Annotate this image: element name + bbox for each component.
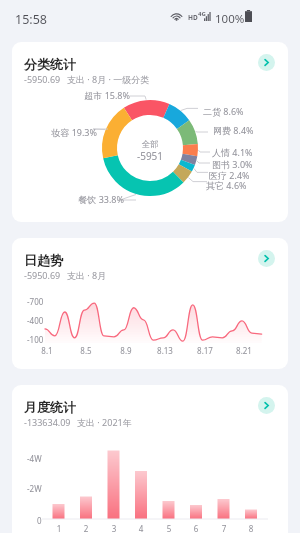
staticText: 8.21 [232,345,256,356]
staticText: 日趋势 [24,252,63,268]
staticText: 1 [49,523,69,533]
staticText: 医疗 2.4% [209,169,250,181]
staticText: 其它 4.6% [206,179,247,191]
staticText: 8.5 [74,345,98,356]
staticText: -5951 [120,149,180,163]
staticText: 二货 8.6% [203,105,244,117]
staticText: 6 [186,523,206,533]
staticText: 4 [131,523,151,533]
staticText: 100% [215,11,245,27]
staticText: 网费 8.4% [213,124,254,136]
staticText: 图书 3.0% [212,158,253,170]
staticText: 8.17 [193,345,217,356]
button[interactable]: 查看详情 [258,250,275,267]
staticText: 妆容 19.3% [12,126,97,138]
staticText: 15:58 [15,11,47,28]
staticText: -4W [27,453,42,464]
staticText: 8 [241,523,261,533]
staticText: -133634.09 [24,416,71,428]
staticText: 8.13 [153,345,177,356]
staticText: -5950.69 [24,269,61,281]
staticText: 5 [159,523,179,533]
staticText: -400 [27,315,44,326]
staticText: 分类统计 [24,56,76,72]
staticText: 0 [37,515,42,526]
staticText: 8.1 [35,345,59,356]
staticText: 支出 · 2021年 [77,416,132,428]
staticText: 2 [76,523,96,533]
button[interactable]: 查看详情 [258,54,275,71]
staticText: -2W [27,483,42,494]
staticText: 8.9 [114,345,138,356]
staticText: 人情 4.1% [212,146,253,158]
staticText: 支出 · 8月 · 一级分类 [67,73,150,85]
staticText: -5950.69 [24,73,61,85]
button[interactable]: 查看详情 [258,397,275,414]
staticText: 餐饮 33.8% [34,193,124,205]
staticText: 超市 15.8% [40,89,130,101]
staticText: 3 [104,523,124,533]
staticText: 全部 [120,139,180,150]
staticText: -700 [27,296,44,307]
staticText: 支出 · 8月 [67,269,107,281]
staticText: HD [188,13,198,22]
staticText: -100 [27,334,44,345]
staticText: 7 [214,523,234,533]
staticText: 月度统计 [24,399,76,415]
staticText: 4G [198,10,206,18]
